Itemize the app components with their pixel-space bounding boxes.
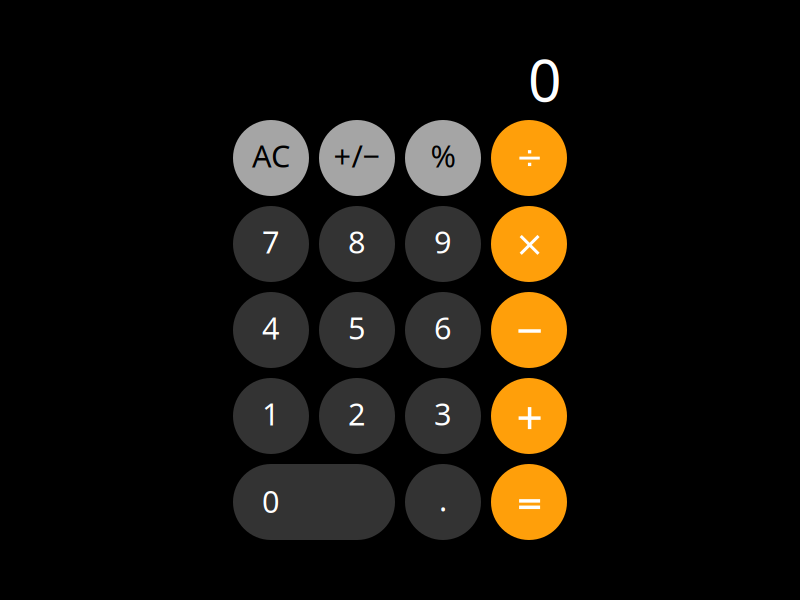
button[interactable]: % [405, 120, 481, 196]
button[interactable]: 6 [405, 292, 481, 368]
button[interactable]: 4 [233, 292, 309, 368]
staticText: 8 [348, 221, 366, 262]
button[interactable]: 5 [319, 292, 395, 368]
button[interactable]: 0 [233, 464, 395, 540]
staticText: 0 [262, 481, 280, 521]
staticText: 4 [262, 307, 280, 348]
staticText: 3 [434, 393, 452, 434]
button[interactable]: Equals [491, 464, 567, 540]
staticText: 2 [348, 393, 366, 434]
staticText: 1 [262, 393, 280, 434]
button[interactable]: 7 [233, 206, 309, 282]
button[interactable]: 3 [405, 378, 481, 454]
staticText: % [430, 135, 455, 176]
button[interactable]: Subtract [491, 292, 567, 368]
button[interactable]: 1 [233, 378, 309, 454]
staticText: +/− [333, 135, 380, 176]
staticText: AC [252, 135, 290, 176]
staticText: 5 [348, 307, 366, 348]
staticText: 0 [528, 40, 562, 118]
staticText: 6 [434, 307, 452, 348]
button[interactable]: 8 [319, 206, 395, 282]
button[interactable]: Multiply [491, 206, 567, 282]
staticText: 9 [434, 221, 452, 262]
button[interactable]: Add [491, 378, 567, 454]
staticText: . [439, 479, 447, 520]
button[interactable]: 9 [405, 206, 481, 282]
button[interactable]: 2 [319, 378, 395, 454]
button[interactable]: Divide [491, 120, 567, 196]
button[interactable]: +/− [319, 120, 395, 196]
button[interactable]: AC [233, 120, 309, 196]
staticText: 7 [262, 221, 280, 262]
button[interactable]: . [405, 464, 481, 540]
